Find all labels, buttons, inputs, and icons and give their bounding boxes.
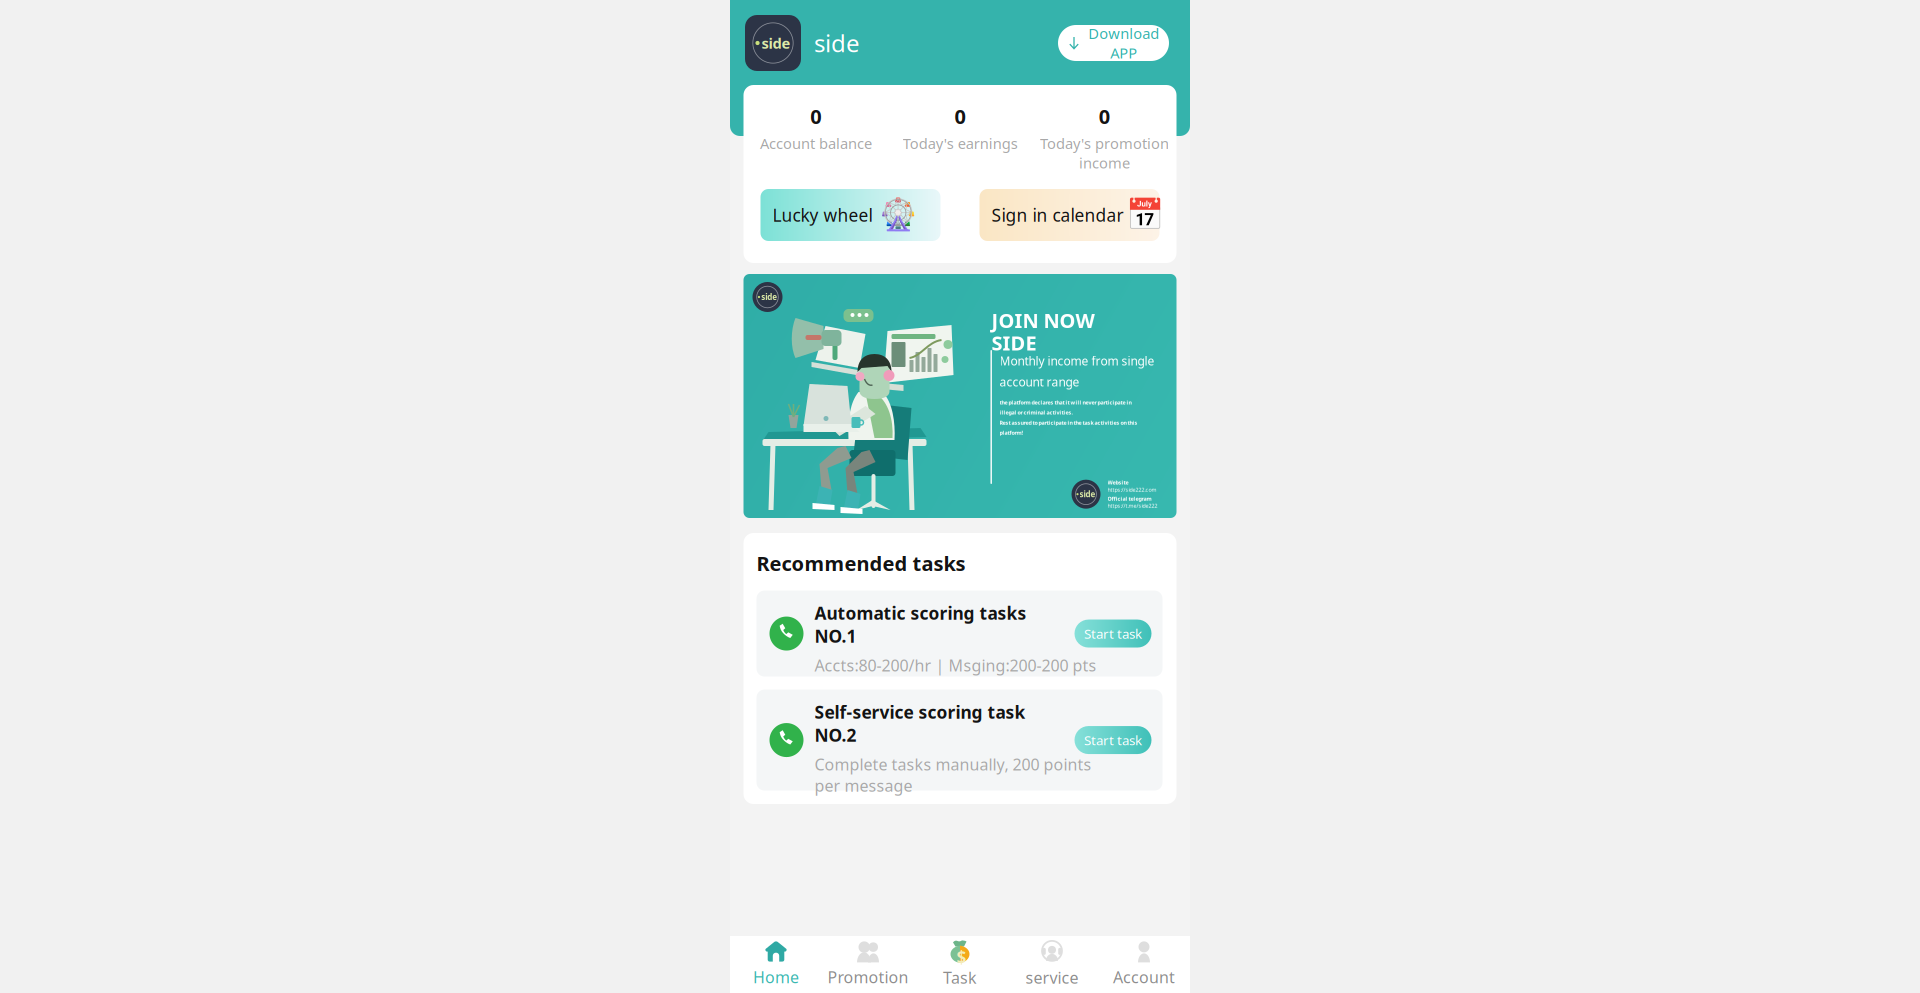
staticText: service: [1025, 967, 1078, 988]
staticText: https://t.me/side222: [1107, 502, 1157, 509]
staticText: Account balance: [760, 134, 872, 153]
staticText: per message: [814, 775, 912, 796]
button[interactable]: 📅: [979, 189, 1159, 241]
staticText: platform!: [999, 429, 1023, 436]
staticText: 0: [810, 103, 821, 130]
staticText: Self-service scoring task: [814, 701, 1025, 724]
staticText: illegal or criminal activities.: [999, 409, 1072, 416]
staticText: SIDE: [991, 330, 1036, 356]
staticText: NO.2: [814, 724, 856, 747]
staticText: Today's earnings: [902, 134, 1017, 153]
staticText: Complete tasks manually, 200 points: [814, 754, 1091, 775]
staticText: Website: [1107, 479, 1128, 486]
staticText: Monthly income from single: [999, 353, 1154, 369]
staticText: Automatic scoring tasks: [814, 602, 1026, 625]
button[interactable]: Promotion: [822, 936, 914, 993]
button[interactable]: Download APP: [1058, 25, 1169, 61]
staticText: 🎡: [878, 197, 916, 232]
staticText: Accts:80-200/hr | Msging:200-200 pts: [814, 655, 1096, 676]
button[interactable]: 🎡: [760, 189, 940, 241]
button[interactable]: Self-service scoring task: [756, 690, 1162, 791]
staticText: https://side222.com: [1107, 486, 1156, 493]
staticText: account range: [999, 374, 1079, 390]
staticText: Task: [943, 967, 977, 988]
staticText: Lucky wheel: [772, 203, 872, 226]
staticText: side: [814, 27, 860, 59]
staticText: 0: [1099, 103, 1110, 130]
staticText: Recommended tasks: [756, 550, 965, 577]
staticText: Official telegram: [1107, 495, 1151, 502]
staticText: 📅: [1125, 197, 1163, 232]
staticText: side: [1080, 489, 1096, 499]
staticText: Account: [1113, 966, 1175, 988]
button[interactable]: $: [914, 936, 1006, 993]
staticText: JOIN NOW: [991, 307, 1094, 334]
staticText: Today's promotion income: [1040, 134, 1169, 173]
staticText: Promotion: [827, 966, 908, 988]
button[interactable]: Account: [1098, 936, 1190, 993]
button[interactable]: Automatic scoring tasks: [756, 591, 1162, 677]
staticText: Download APP: [1088, 23, 1159, 62]
staticText: Rest assured to participate in the task …: [999, 419, 1137, 426]
staticText: Home: [753, 966, 799, 988]
staticText: $: [956, 946, 966, 969]
staticText: 0: [954, 103, 965, 130]
staticText: Start task: [1084, 625, 1142, 642]
staticText: NO.1: [814, 625, 856, 648]
staticText: side: [762, 33, 791, 53]
staticText: side: [761, 292, 777, 302]
staticText: Start task: [1084, 731, 1142, 749]
staticText: Sign in calendar: [991, 203, 1123, 226]
button[interactable]: Home: [730, 936, 822, 993]
staticText: the platform declares that it will never…: [999, 399, 1131, 406]
button[interactable]: service: [1006, 936, 1098, 993]
